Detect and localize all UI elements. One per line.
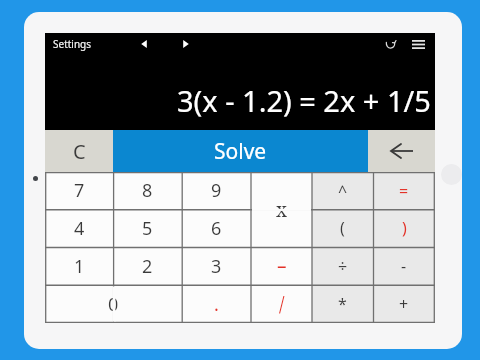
- button[interactable]: Solve: [113, 130, 368, 172]
- staticText: 9: [211, 178, 222, 203]
- button[interactable]: 8: [113, 172, 182, 209]
- staticText: 8: [142, 178, 153, 203]
- button[interactable]: (: [312, 209, 373, 247]
- staticText: –: [277, 253, 287, 279]
- button[interactable]: Settings: [51, 37, 94, 51]
- button[interactable]: ): [373, 209, 435, 247]
- staticText: 7: [74, 178, 85, 203]
- button[interactable]: -: [373, 247, 435, 285]
- button[interactable]: /: [251, 285, 312, 323]
- button[interactable]: x: [251, 172, 312, 247]
- staticText: =: [399, 180, 409, 202]
- button[interactable]: 0: [45, 285, 182, 323]
- staticText: ^: [338, 180, 348, 202]
- staticText: -: [401, 255, 407, 277]
- staticText: x: [276, 197, 287, 223]
- staticText: /: [279, 291, 285, 317]
- button[interactable]: –: [251, 247, 312, 285]
- staticText: 6: [211, 216, 222, 241]
- staticText: (: [340, 217, 345, 239]
- button[interactable]: Next: [176, 34, 196, 54]
- staticText: 3: [211, 254, 222, 279]
- button[interactable]: 7: [45, 172, 113, 209]
- button[interactable]: 3: [182, 247, 251, 285]
- staticText: 4: [74, 216, 85, 241]
- button[interactable]: ÷: [312, 247, 373, 285]
- button[interactable]: 5: [113, 209, 182, 247]
- staticText: ÷: [338, 255, 348, 277]
- staticText: 1: [74, 254, 85, 279]
- button[interactable]: Undo: [379, 33, 401, 55]
- staticText: 0: [108, 292, 119, 317]
- button[interactable]: =: [373, 172, 435, 209]
- button[interactable]: Previous: [134, 34, 154, 54]
- staticText: 2: [142, 254, 153, 279]
- button[interactable]: 4: [45, 209, 113, 247]
- staticText: C: [73, 138, 86, 165]
- staticText: +: [399, 293, 409, 315]
- button[interactable]: 6: [182, 209, 251, 247]
- staticText: *: [338, 293, 347, 315]
- staticText: 3(x - 1.2) = 2x + 1/5: [177, 81, 431, 120]
- button[interactable]: C: [45, 130, 113, 172]
- staticText: .: [214, 292, 219, 317]
- button[interactable]: 1: [45, 247, 113, 285]
- button[interactable]: Backspace: [368, 130, 435, 172]
- staticText: ): [402, 217, 407, 239]
- button[interactable]: ^: [312, 172, 373, 209]
- staticText: Solve: [214, 137, 267, 166]
- button[interactable]: +: [373, 285, 435, 323]
- button[interactable]: 9: [182, 172, 251, 209]
- button[interactable]: .: [182, 285, 251, 323]
- button[interactable]: *: [312, 285, 373, 323]
- button[interactable]: Menu: [407, 33, 429, 55]
- button[interactable]: 2: [113, 247, 182, 285]
- staticText: 5: [142, 216, 153, 241]
